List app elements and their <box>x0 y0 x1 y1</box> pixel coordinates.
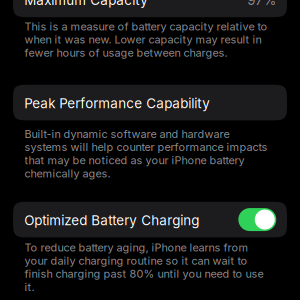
button[interactable]: Maximum Capacity <box>13 0 287 17</box>
staticText: 97% <box>247 0 276 8</box>
staticText: Peak Performance Capability <box>24 95 210 111</box>
staticText: Optimized Battery Charging <box>24 212 199 229</box>
staticText: Maximum Capacity <box>24 0 148 8</box>
button[interactable]: Peak Performance Capability <box>13 85 287 120</box>
button[interactable]: Optimized Battery Charging <box>13 202 287 237</box>
staticText: This is a measure of battery capacity re… <box>25 20 268 59</box>
staticText: To reduce battery aging, iPhone learns f… <box>25 241 264 294</box>
staticText: Built-in dynamic software and hardware s… <box>25 127 268 180</box>
